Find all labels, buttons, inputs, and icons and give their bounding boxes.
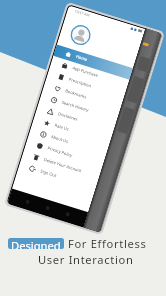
staticText: For Effortless — [68, 236, 147, 251]
staticText: User Interaction — [38, 252, 134, 267]
staticText: About Us — [50, 134, 69, 145]
button[interactable]: Delete Your Account — [21, 147, 101, 183]
staticText: Sign Out — [39, 168, 57, 179]
staticText: Prescription — [68, 77, 93, 90]
button[interactable]: Disclaimer — [35, 102, 115, 137]
button[interactable]: Home — [53, 44, 133, 80]
staticText: Home — [75, 54, 88, 63]
staticText: Delete Your Account — [43, 157, 82, 174]
button[interactable]: Sign Out — [17, 159, 97, 194]
staticText: Search History — [61, 100, 89, 114]
button[interactable]: Prescription — [46, 67, 126, 102]
staticText: Privacy Policy — [47, 145, 73, 159]
button[interactable]: About Us — [28, 125, 108, 160]
button[interactable]: Rate Us — [32, 113, 112, 148]
staticText: App Purchase — [71, 65, 99, 79]
staticText: Disclaimer — [57, 111, 79, 123]
staticText: Rate Us — [54, 123, 70, 133]
button[interactable]: Bookmarks — [42, 79, 122, 114]
button[interactable]: App Purchase — [50, 56, 129, 91]
staticText: Bookmarks — [64, 88, 87, 100]
button[interactable]: Search History — [39, 90, 119, 125]
staticText: 10:47 AM — [74, 8, 91, 18]
button[interactable]: Privacy Policy — [25, 136, 105, 171]
staticText: Designed — [11, 238, 61, 249]
